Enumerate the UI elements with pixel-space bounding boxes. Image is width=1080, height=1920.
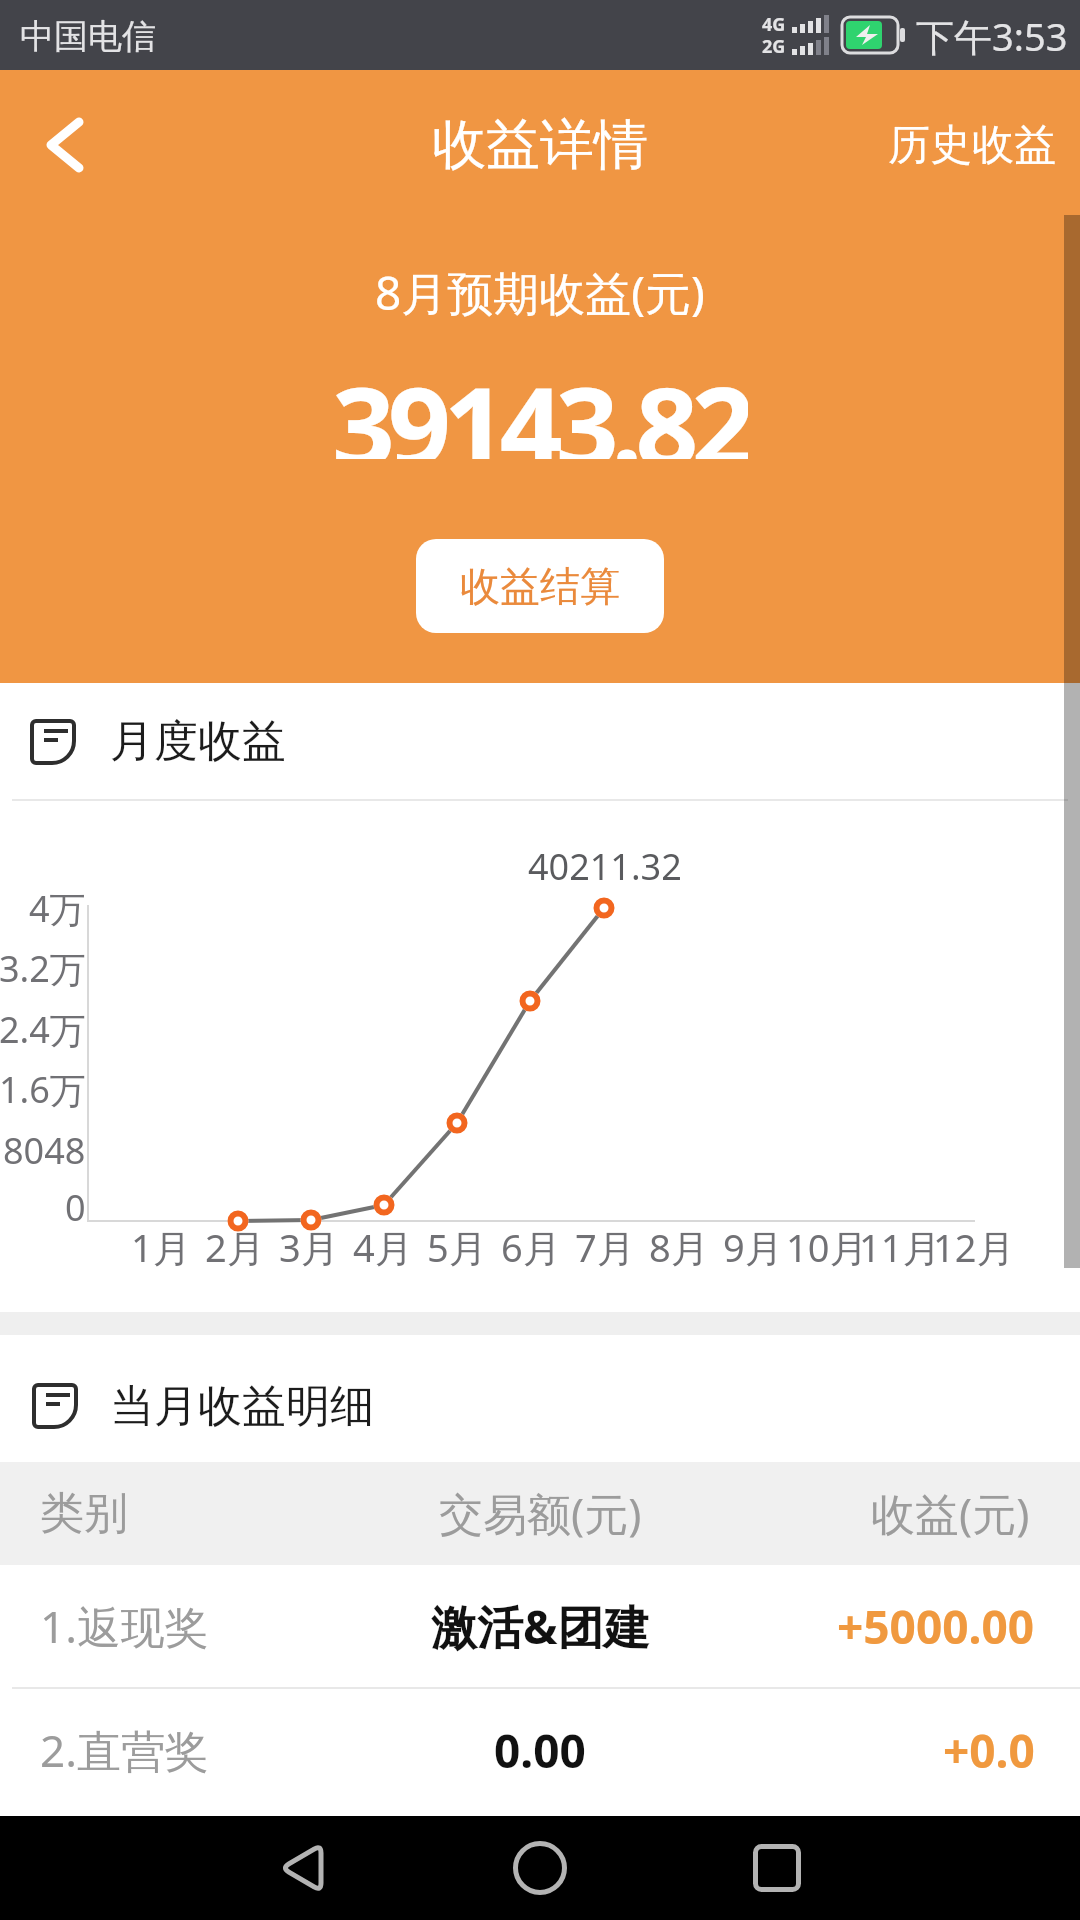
staticText: 6月: [501, 1221, 561, 1273]
staticText: 4G: [762, 12, 786, 37]
staticText: 收益详情: [432, 111, 648, 179]
staticText: 39143.82: [332, 349, 748, 459]
staticText: 激活&团建: [431, 1595, 650, 1658]
staticText: 8月: [649, 1221, 709, 1273]
button[interactable]: [717, 1816, 837, 1920]
button[interactable]: 1.返现奖: [0, 1565, 1080, 1687]
staticText: 3月: [279, 1221, 339, 1273]
staticText: 3.2万: [0, 944, 86, 993]
staticText: 类别: [40, 1486, 128, 1541]
staticText: 中国电信: [20, 15, 156, 58]
button[interactable]: [480, 1816, 600, 1920]
staticText: 交易额(元): [439, 1483, 642, 1543]
button[interactable]: [20, 109, 110, 181]
staticText: 2G: [762, 34, 786, 59]
staticText: 2月: [205, 1221, 265, 1273]
staticText: +5000.00: [837, 1595, 1035, 1658]
staticText: 4万: [29, 884, 86, 933]
staticText: 5月: [427, 1221, 487, 1273]
staticText: 1.6万: [0, 1065, 86, 1114]
staticText: 下午3:53: [916, 10, 1068, 62]
staticText: 2.直营奖: [40, 1720, 209, 1780]
staticText: 11月: [859, 1221, 941, 1273]
staticText: 4月: [353, 1221, 413, 1273]
staticText: 当月收益明细: [110, 1379, 374, 1434]
staticText: 0.00: [494, 1719, 586, 1782]
staticText: 收益(元): [871, 1483, 1030, 1543]
staticText: 12月: [933, 1221, 1015, 1273]
staticText: 8月预期收益(元): [375, 261, 705, 321]
staticText: 1月: [131, 1221, 191, 1273]
staticText: 月度收益: [110, 714, 286, 769]
staticText: 9月: [723, 1221, 783, 1273]
staticText: 7月: [575, 1221, 635, 1273]
staticText: 收益结算: [460, 561, 620, 611]
staticText: 1.返现奖: [40, 1596, 209, 1656]
staticText: 40211.32: [528, 842, 682, 891]
staticText: 8048: [3, 1126, 86, 1175]
staticText: 历史收益: [888, 119, 1056, 172]
staticText: 0: [65, 1183, 86, 1232]
button[interactable]: [242, 1816, 362, 1920]
staticText: 2.4万: [0, 1005, 86, 1054]
staticText: +0.0: [943, 1719, 1035, 1782]
staticText: 10月: [786, 1221, 868, 1273]
button[interactable]: 收益结算: [416, 539, 664, 633]
button[interactable]: 2.直营奖: [0, 1689, 1080, 1811]
button[interactable]: 历史收益: [853, 109, 1056, 181]
